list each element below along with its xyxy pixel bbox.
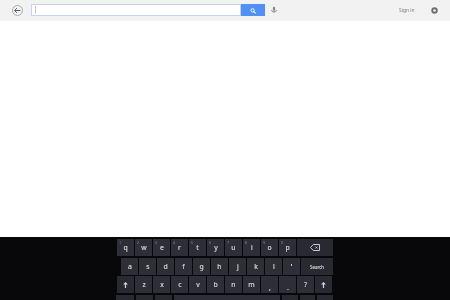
button[interactable]: u bbox=[225, 239, 242, 256]
staticText: g bbox=[199, 262, 204, 271]
button[interactable]: c bbox=[171, 276, 188, 293]
button[interactable]: ? bbox=[297, 276, 314, 293]
button[interactable]: l bbox=[265, 258, 282, 275]
staticText: 9 bbox=[263, 240, 266, 245]
staticText: c bbox=[178, 280, 182, 289]
staticText: , bbox=[269, 282, 271, 292]
staticText: d bbox=[163, 262, 168, 271]
staticText: w bbox=[141, 243, 147, 252]
button[interactable] bbox=[297, 239, 333, 256]
button[interactable]: p bbox=[279, 239, 296, 256]
staticText: p bbox=[285, 243, 290, 252]
staticText: l bbox=[273, 262, 275, 271]
button[interactable]: r bbox=[171, 239, 188, 256]
button[interactable]: Search bbox=[301, 258, 333, 275]
staticText: 6 bbox=[209, 240, 212, 245]
staticText: e bbox=[160, 243, 164, 252]
staticText: r bbox=[178, 243, 181, 252]
button[interactable]: y bbox=[207, 239, 224, 256]
staticText: t bbox=[196, 243, 199, 252]
button[interactable]: w bbox=[135, 239, 152, 256]
staticText: q bbox=[123, 243, 128, 252]
button[interactable]: q bbox=[117, 239, 134, 256]
staticText: v bbox=[196, 280, 200, 289]
button[interactable] bbox=[315, 276, 332, 293]
staticText: z bbox=[142, 280, 146, 289]
staticText: 4 bbox=[173, 240, 176, 245]
button[interactable]: k bbox=[247, 258, 264, 275]
button[interactable]: e bbox=[153, 239, 170, 256]
staticText: s bbox=[146, 262, 150, 271]
button[interactable]: a bbox=[121, 258, 138, 275]
staticText: k bbox=[254, 262, 258, 271]
button[interactable]: m bbox=[243, 276, 260, 293]
button[interactable]: Voice search bbox=[269, 3, 279, 13]
staticText: b bbox=[213, 280, 218, 289]
button[interactable]: h bbox=[211, 258, 228, 275]
button[interactable]: Settings bbox=[429, 5, 439, 15]
staticText: 7 bbox=[227, 240, 230, 245]
staticText: x bbox=[160, 280, 164, 289]
staticText: 0 bbox=[281, 240, 284, 245]
button[interactable]: n bbox=[225, 276, 242, 293]
staticText: ? bbox=[304, 280, 307, 289]
button[interactable]: , bbox=[261, 276, 278, 293]
staticText: y bbox=[214, 243, 218, 252]
button[interactable]: f bbox=[175, 258, 192, 275]
button[interactable]: j bbox=[229, 258, 246, 275]
staticText: h bbox=[217, 262, 222, 271]
button[interactable]: i bbox=[243, 239, 260, 256]
staticText: 8 bbox=[245, 240, 248, 245]
staticText: n bbox=[231, 280, 236, 289]
staticText: 2 bbox=[137, 240, 140, 245]
button[interactable]: Back bbox=[12, 5, 23, 16]
button[interactable] bbox=[117, 276, 134, 293]
button[interactable]: z bbox=[135, 276, 152, 293]
button[interactable]: . bbox=[279, 276, 296, 293]
button[interactable]: Sign in bbox=[397, 6, 417, 15]
button[interactable]: b bbox=[207, 276, 224, 293]
button[interactable]: s bbox=[139, 258, 156, 275]
button[interactable] bbox=[283, 258, 300, 275]
staticText: f bbox=[182, 262, 185, 271]
staticText: 5 bbox=[191, 240, 194, 245]
staticText: i bbox=[251, 243, 253, 252]
staticText: . bbox=[287, 282, 289, 292]
staticText: 1 bbox=[119, 240, 122, 245]
button[interactable]: g bbox=[193, 258, 210, 275]
staticText: Search bbox=[310, 264, 324, 270]
staticText: j bbox=[237, 262, 239, 271]
staticText: 3 bbox=[155, 240, 158, 245]
staticText: m bbox=[248, 280, 255, 289]
button[interactable]: Search bbox=[241, 4, 265, 16]
button[interactable] bbox=[31, 4, 241, 16]
staticText: a bbox=[128, 262, 132, 271]
button[interactable]: v bbox=[189, 276, 206, 293]
button[interactable]: x bbox=[153, 276, 170, 293]
button[interactable]: o bbox=[261, 239, 278, 256]
button[interactable]: d bbox=[157, 258, 174, 275]
staticText: u bbox=[231, 243, 236, 252]
staticText: Sign in bbox=[399, 7, 415, 14]
button[interactable]: t bbox=[189, 239, 206, 256]
staticText: o bbox=[267, 243, 272, 252]
